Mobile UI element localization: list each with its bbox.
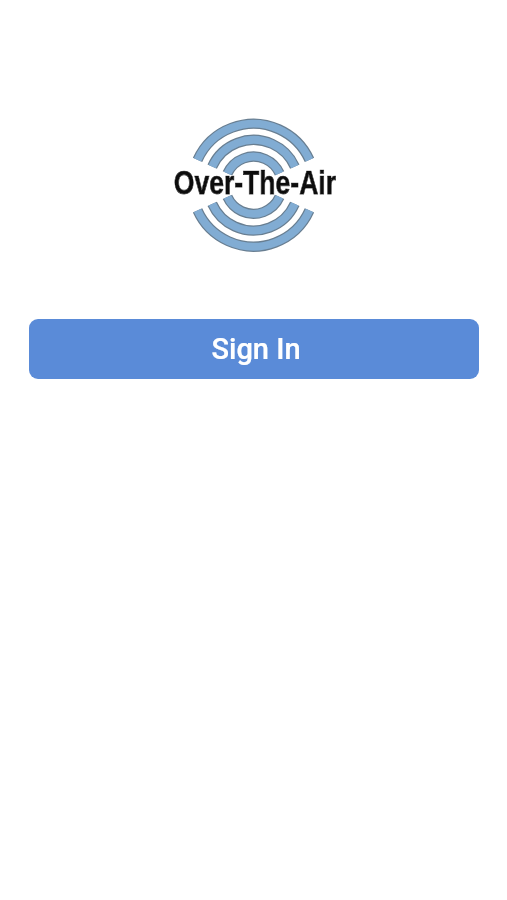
staticText: Sign In (211, 332, 301, 366)
other: Over-The-Air logo (180, 112, 327, 259)
button[interactable]: Sign In (29, 319, 479, 379)
staticText: Over-The-Air (174, 164, 336, 201)
staticText: Over-The-Air (174, 164, 336, 201)
